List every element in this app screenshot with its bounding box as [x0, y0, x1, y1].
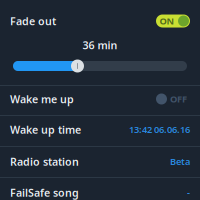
button[interactable]: Fade out — [0, 3, 200, 39]
staticText: Fade out — [10, 14, 56, 28]
staticText: - — [187, 186, 190, 199]
button[interactable]: Wake up time — [0, 114, 200, 145]
staticText: Wake me up — [10, 92, 74, 106]
staticText: OFF — [170, 93, 187, 105]
staticText: 13:42 06.06.16 — [129, 123, 190, 136]
staticText: ON — [159, 15, 174, 27]
staticText: 36 min — [82, 38, 117, 52]
staticText: Radio station — [10, 154, 79, 169]
button[interactable]: FailSafe song — [0, 177, 200, 200]
staticText: Wake up time — [10, 122, 81, 137]
button[interactable]: Radio station — [0, 146, 200, 177]
button[interactable]: Wake me up — [0, 84, 200, 114]
staticText: FailSafe song — [10, 185, 79, 200]
staticText: Beta — [170, 155, 190, 168]
